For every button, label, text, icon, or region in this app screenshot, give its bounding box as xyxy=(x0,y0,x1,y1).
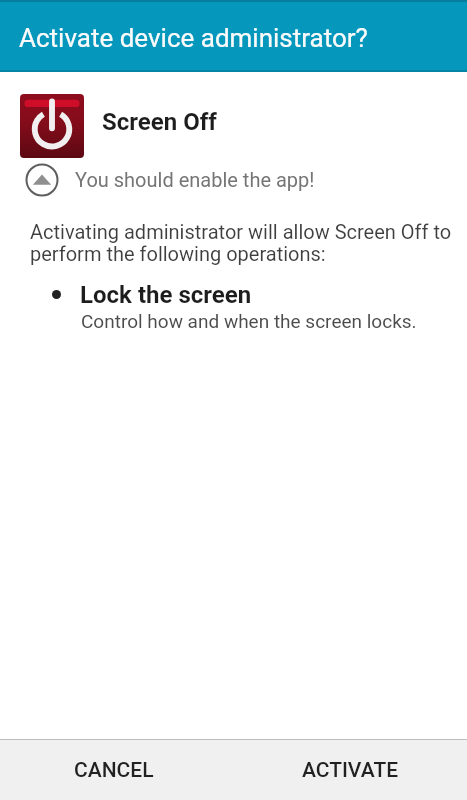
staticText: ACTIVATE xyxy=(302,758,399,783)
button[interactable]: CANCEL xyxy=(0,740,233,800)
staticText: CANCEL xyxy=(74,758,154,783)
staticText: You should enable the app! xyxy=(75,168,315,191)
staticText: Activating administrator will allow Scre… xyxy=(30,220,452,243)
button[interactable]: ACTIVATE xyxy=(233,740,467,800)
button[interactable] xyxy=(10,88,290,164)
staticText: Activate device administrator? xyxy=(19,23,368,53)
staticText: Lock the screen xyxy=(80,281,252,309)
staticText: Screen Off xyxy=(102,108,217,136)
button[interactable] xyxy=(20,160,320,200)
staticText: Control how and when the screen locks. xyxy=(81,310,417,332)
staticText: perform the following operations: xyxy=(30,242,326,265)
